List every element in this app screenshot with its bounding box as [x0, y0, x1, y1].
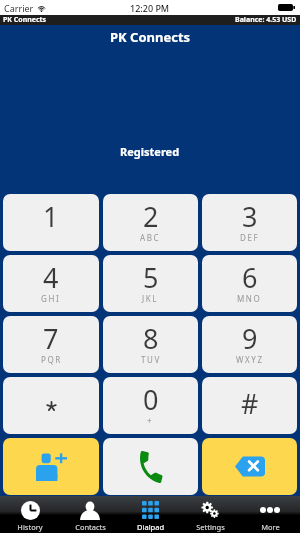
staticText: 8 — [143, 320, 159, 357]
staticText: PK Connects — [3, 15, 47, 25]
button[interactable]: 4 — [3, 255, 99, 312]
staticText: Carrier — [4, 2, 34, 14]
staticText: History — [17, 522, 43, 532]
staticText: ABC — [140, 232, 161, 243]
button[interactable]: History — [0, 496, 60, 533]
staticText: Dialpad — [137, 522, 164, 532]
button[interactable]: 6 — [202, 255, 297, 312]
staticText: Settings — [196, 522, 225, 532]
button[interactable]: 2 — [103, 194, 198, 251]
button[interactable]: 5 — [103, 255, 198, 312]
staticText: 7 — [43, 320, 59, 357]
staticText: JKL — [142, 293, 159, 304]
staticText: 9 — [242, 320, 258, 357]
staticText: Contacts — [75, 522, 106, 532]
staticText: Registered — [120, 144, 180, 159]
staticText: 3 — [242, 198, 258, 235]
button[interactable]: 3 — [202, 194, 297, 251]
staticText: Balance: 4.53 USD — [235, 15, 297, 25]
button[interactable]: Dialpad — [120, 496, 180, 533]
staticText: TUV — [141, 354, 161, 365]
staticText: 12:20 PM — [130, 2, 170, 14]
button[interactable]: 8 — [103, 316, 198, 373]
button[interactable]: More — [240, 496, 300, 533]
staticText: MNO — [237, 293, 262, 304]
staticText: 1 — [43, 198, 59, 235]
staticText: # — [241, 385, 259, 422]
staticText: PK Connects — [110, 28, 191, 46]
button[interactable]: Contacts — [60, 496, 120, 533]
staticText: 0 — [143, 381, 159, 418]
staticText: 6 — [242, 259, 258, 296]
staticText: 2 — [143, 198, 159, 235]
button[interactable]: 7 — [3, 316, 99, 373]
button[interactable]: Settings — [180, 496, 240, 533]
staticText: DEF — [240, 232, 260, 243]
staticText: More — [261, 522, 280, 532]
button[interactable]: Backspace — [202, 438, 297, 495]
staticText: + — [147, 415, 154, 426]
staticText: WXYZ — [236, 354, 264, 365]
button[interactable]: 1 — [3, 194, 99, 251]
staticText: PQR — [41, 354, 62, 365]
staticText: GHI — [41, 293, 61, 304]
button[interactable]: Call — [103, 438, 198, 495]
button[interactable]: 0 — [103, 377, 198, 434]
staticText: 5 — [143, 259, 159, 296]
button[interactable]: 9 — [202, 316, 297, 373]
button[interactable] — [3, 377, 99, 434]
staticText: 4 — [43, 259, 59, 296]
button[interactable]: # — [202, 377, 297, 434]
button[interactable]: Add contact — [3, 438, 99, 495]
